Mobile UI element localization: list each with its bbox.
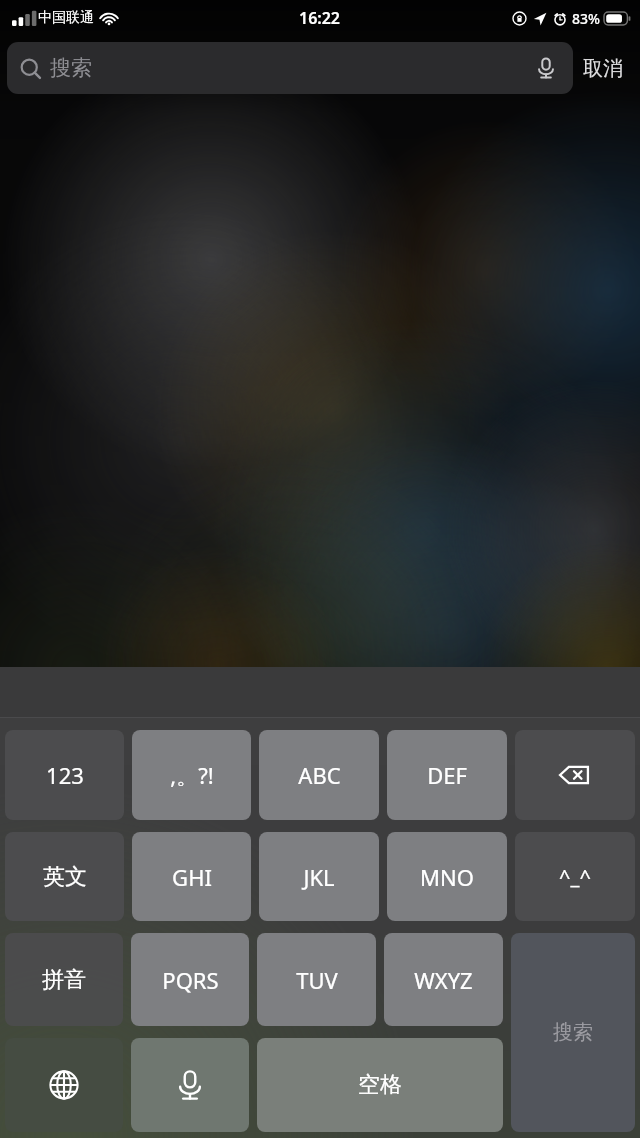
button[interactable]: Backspace <box>515 730 635 820</box>
staticText: 搜索 <box>50 55 92 81</box>
button[interactable]: 搜索 <box>511 933 635 1132</box>
staticText: TUV <box>296 965 338 995</box>
staticText: 123 <box>46 760 84 790</box>
staticText: PQRS <box>162 965 219 995</box>
button[interactable]: 取消 <box>573 48 633 89</box>
button[interactable]: MNO <box>387 832 507 921</box>
button[interactable]: JKL <box>259 832 379 921</box>
staticText: 搜索 <box>553 1020 593 1045</box>
staticText: 英文 <box>43 863 87 891</box>
staticText: JKL <box>303 862 335 892</box>
staticText: 拼音 <box>42 966 86 994</box>
staticText: GHI <box>172 862 212 892</box>
staticText: 83% <box>572 9 600 28</box>
button[interactable]: 拼音 <box>5 933 123 1026</box>
button[interactable]: ^_^ <box>515 832 635 921</box>
button[interactable]: WXYZ <box>384 933 503 1026</box>
staticText: ,。?! <box>170 760 214 790</box>
staticText: DEF <box>427 760 467 790</box>
button[interactable]: 123 <box>5 730 124 820</box>
staticText: 取消 <box>583 56 623 81</box>
staticText: 中国联通 <box>38 9 94 27</box>
button[interactable]: DEF <box>387 730 507 820</box>
button[interactable]: ,。?! <box>132 730 251 820</box>
staticText: ^_^ <box>559 863 591 890</box>
staticText: ABC <box>298 760 341 790</box>
button[interactable]: Voice search <box>532 54 560 82</box>
button[interactable]: 英文 <box>5 832 124 921</box>
staticText: MNO <box>420 862 474 892</box>
button[interactable]: TUV <box>257 933 376 1026</box>
button[interactable]: PQRS <box>131 933 249 1026</box>
staticText: 16:22 <box>299 7 341 29</box>
staticText: 空格 <box>358 1071 402 1099</box>
button[interactable]: Switch language <box>5 1038 123 1132</box>
staticText: WXYZ <box>414 965 473 995</box>
button[interactable]: Dictation <box>131 1038 249 1132</box>
button[interactable]: 搜索 <box>7 42 573 94</box>
button[interactable]: GHI <box>132 832 251 921</box>
button[interactable]: 空格 <box>257 1038 503 1132</box>
button[interactable]: ABC <box>259 730 379 820</box>
